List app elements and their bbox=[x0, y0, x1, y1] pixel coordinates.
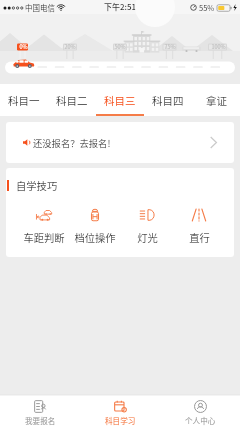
button[interactable]: 灯光 bbox=[121, 198, 173, 245]
staticText: 中国电信 bbox=[25, 2, 55, 13]
staticText: 自学技巧 bbox=[16, 178, 58, 193]
staticText: 100% bbox=[211, 43, 226, 51]
button[interactable]: 直行 bbox=[173, 198, 225, 245]
staticText: 我要报名 bbox=[25, 415, 56, 426]
staticText: 科目学习 bbox=[105, 415, 136, 426]
button[interactable]: 还没报名？去报名! bbox=[6, 122, 234, 163]
staticText: 车距判断 bbox=[23, 230, 65, 245]
staticText: 还没报名？去报名! bbox=[33, 136, 111, 149]
staticText: 直行 bbox=[189, 230, 210, 245]
button[interactable]: 个人中心 bbox=[160, 395, 240, 427]
button[interactable]: 科目二 bbox=[48, 84, 96, 116]
staticText: 0% bbox=[19, 43, 28, 51]
button[interactable]: 科目四 bbox=[144, 84, 192, 116]
button[interactable]: 车距判断 bbox=[18, 198, 69, 245]
button[interactable]: 科目一 bbox=[0, 84, 48, 116]
staticText: 科目一 bbox=[8, 93, 40, 108]
staticText: 科目四 bbox=[152, 93, 184, 108]
staticText: 个人中心 bbox=[185, 415, 216, 426]
staticText: 50% bbox=[114, 43, 126, 51]
staticText: 科目二 bbox=[56, 93, 88, 108]
staticText: 科目三 bbox=[104, 93, 136, 108]
staticText: 灯光 bbox=[137, 230, 158, 245]
staticText: 55% bbox=[199, 2, 215, 13]
staticText: 拿证 bbox=[206, 93, 227, 108]
staticText: 下午2:51 bbox=[104, 1, 137, 13]
staticText: 档位操作 bbox=[74, 230, 116, 245]
button[interactable]: 拿证 bbox=[192, 84, 240, 116]
button[interactable]: 我要报名 bbox=[0, 395, 80, 427]
staticText: 75% bbox=[164, 43, 176, 51]
button[interactable]: 科目学习 bbox=[80, 395, 160, 427]
button[interactable]: 科目三 bbox=[96, 84, 144, 116]
staticText: 20% bbox=[64, 43, 76, 51]
button[interactable]: 档位操作 bbox=[69, 198, 121, 245]
